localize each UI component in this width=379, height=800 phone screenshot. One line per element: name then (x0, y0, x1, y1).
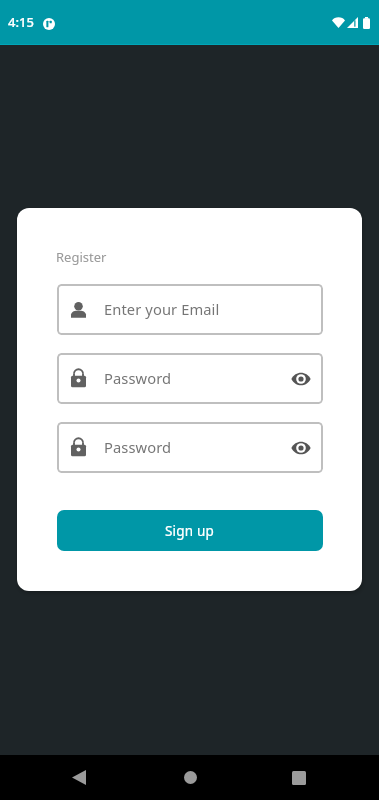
staticText: Password (104, 437, 172, 457)
staticText: Sign up (165, 522, 215, 540)
button[interactable]: Recent apps (243, 755, 355, 800)
button[interactable]: Home (131, 755, 243, 800)
staticText: Enter your Email (104, 299, 220, 319)
button[interactable]: Enter your Email (57, 284, 323, 335)
staticText: Password (104, 368, 172, 388)
button[interactable]: Sign up (57, 510, 323, 551)
button[interactable]: Password (57, 422, 323, 473)
staticText: Register (56, 248, 107, 266)
staticText: 4:15 (8, 13, 34, 31)
button[interactable]: Back (26, 755, 131, 800)
button[interactable]: Password (57, 353, 323, 404)
